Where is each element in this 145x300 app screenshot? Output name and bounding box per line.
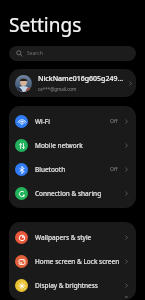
staticText: Wi-Fi (35, 117, 110, 126)
button[interactable]: Connection & sharing (9, 181, 136, 205)
staticText: Bluetooth (35, 165, 110, 174)
button[interactable]: Search settings (9, 46, 136, 61)
staticText: NickName016g605g249d2 (38, 74, 124, 84)
staticText: Display & brightness (35, 281, 123, 290)
button[interactable]: Wallpapers & style (9, 225, 136, 249)
button[interactable]: Bluetooth (9, 157, 136, 181)
staticText: Wallpapers & style (35, 233, 123, 242)
button[interactable]: NickName016g605g249d2 (9, 69, 136, 97)
button[interactable]: Home screen & Lock screen (9, 249, 136, 273)
staticText: Connection & sharing (35, 189, 123, 198)
staticText: Off (110, 118, 118, 125)
staticText: Settings (9, 12, 82, 38)
staticText: Off (110, 166, 118, 173)
button[interactable]: Display & brightness (9, 273, 136, 297)
button[interactable]: Wi-Fi (9, 109, 136, 133)
staticText: Search (27, 50, 43, 57)
staticText: Home screen & Lock screen (35, 257, 123, 266)
button[interactable]: Mobile network (9, 133, 136, 157)
staticText: Mobile network (35, 141, 123, 150)
staticText: ce***@gmail.com (38, 86, 77, 92)
